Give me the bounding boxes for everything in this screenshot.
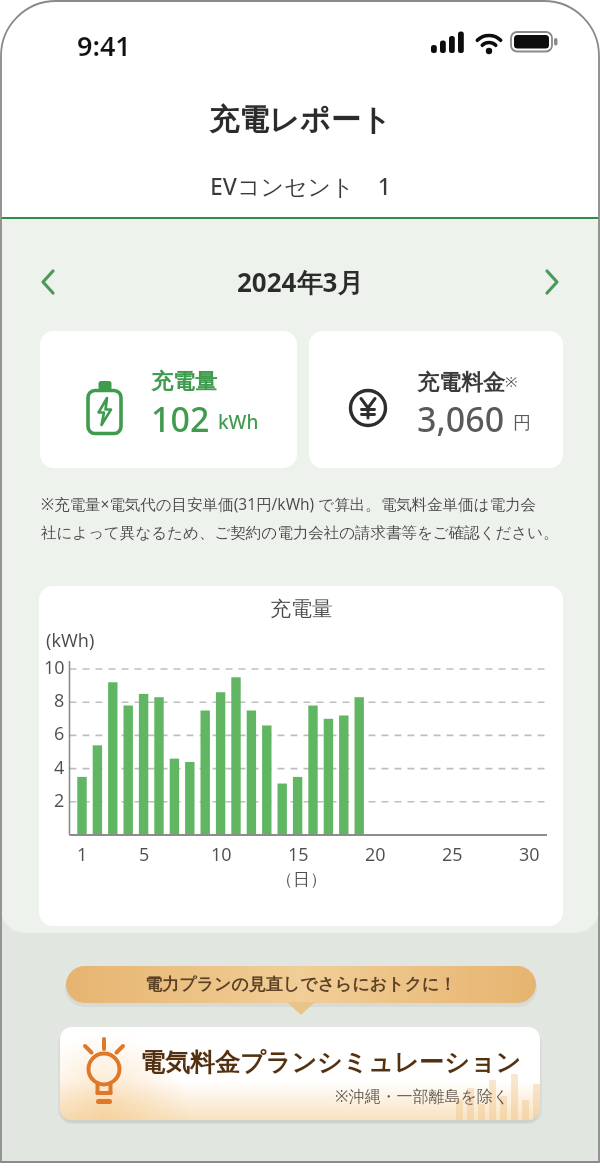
staticText: 2 [54, 788, 65, 813]
button[interactable]: 充電料金 [309, 331, 563, 468]
button[interactable] [535, 265, 569, 299]
staticText: 1 [77, 842, 88, 867]
staticText: 10 [44, 655, 65, 680]
staticText: 10 [211, 842, 232, 867]
staticText: 5 [139, 842, 150, 867]
staticText: 電力プランの見直しでさらにおトクに！ [145, 974, 457, 995]
staticText: 充電量 [151, 368, 217, 396]
staticText: 30 [519, 842, 540, 867]
staticText: ※ [505, 371, 518, 391]
staticText: 3,060 [417, 396, 505, 442]
button[interactable]: 充電量 [40, 331, 297, 468]
staticText: ※沖縄・一部離島を除く [335, 1085, 510, 1107]
button[interactable]: 電力プランの見直しでさらにおトクに！ [66, 966, 536, 1003]
staticText: 20 [365, 842, 386, 867]
staticText: 充電料金 [417, 369, 505, 397]
staticText: 25 [442, 842, 463, 867]
staticText: (kWh) [46, 628, 95, 653]
staticText: 2024年3月 [237, 264, 364, 300]
staticText: 102 [151, 396, 210, 442]
staticText: 15 [288, 842, 309, 867]
staticText: 9:41 [77, 27, 131, 64]
button[interactable] [31, 265, 65, 299]
staticText: 8 [54, 688, 65, 713]
button[interactable]: 電気料金プランシミュレーション [60, 1027, 540, 1120]
staticText: 充電レポート [209, 101, 392, 139]
staticText: 円 [513, 412, 531, 435]
staticText: 充電量 [270, 596, 333, 622]
staticText: 電気料金プランシミュレーション [140, 1047, 521, 1078]
staticText: 6 [54, 721, 65, 746]
staticText: （日） [276, 869, 327, 890]
staticText: EVコンセント 1 [210, 170, 391, 201]
staticText: kWh [218, 409, 259, 435]
staticText: 4 [54, 755, 65, 780]
staticText: ※充電量×電気代の目安単価(31円/kWh) で算出。電気料金単価は電力会 社に… [41, 493, 559, 543]
